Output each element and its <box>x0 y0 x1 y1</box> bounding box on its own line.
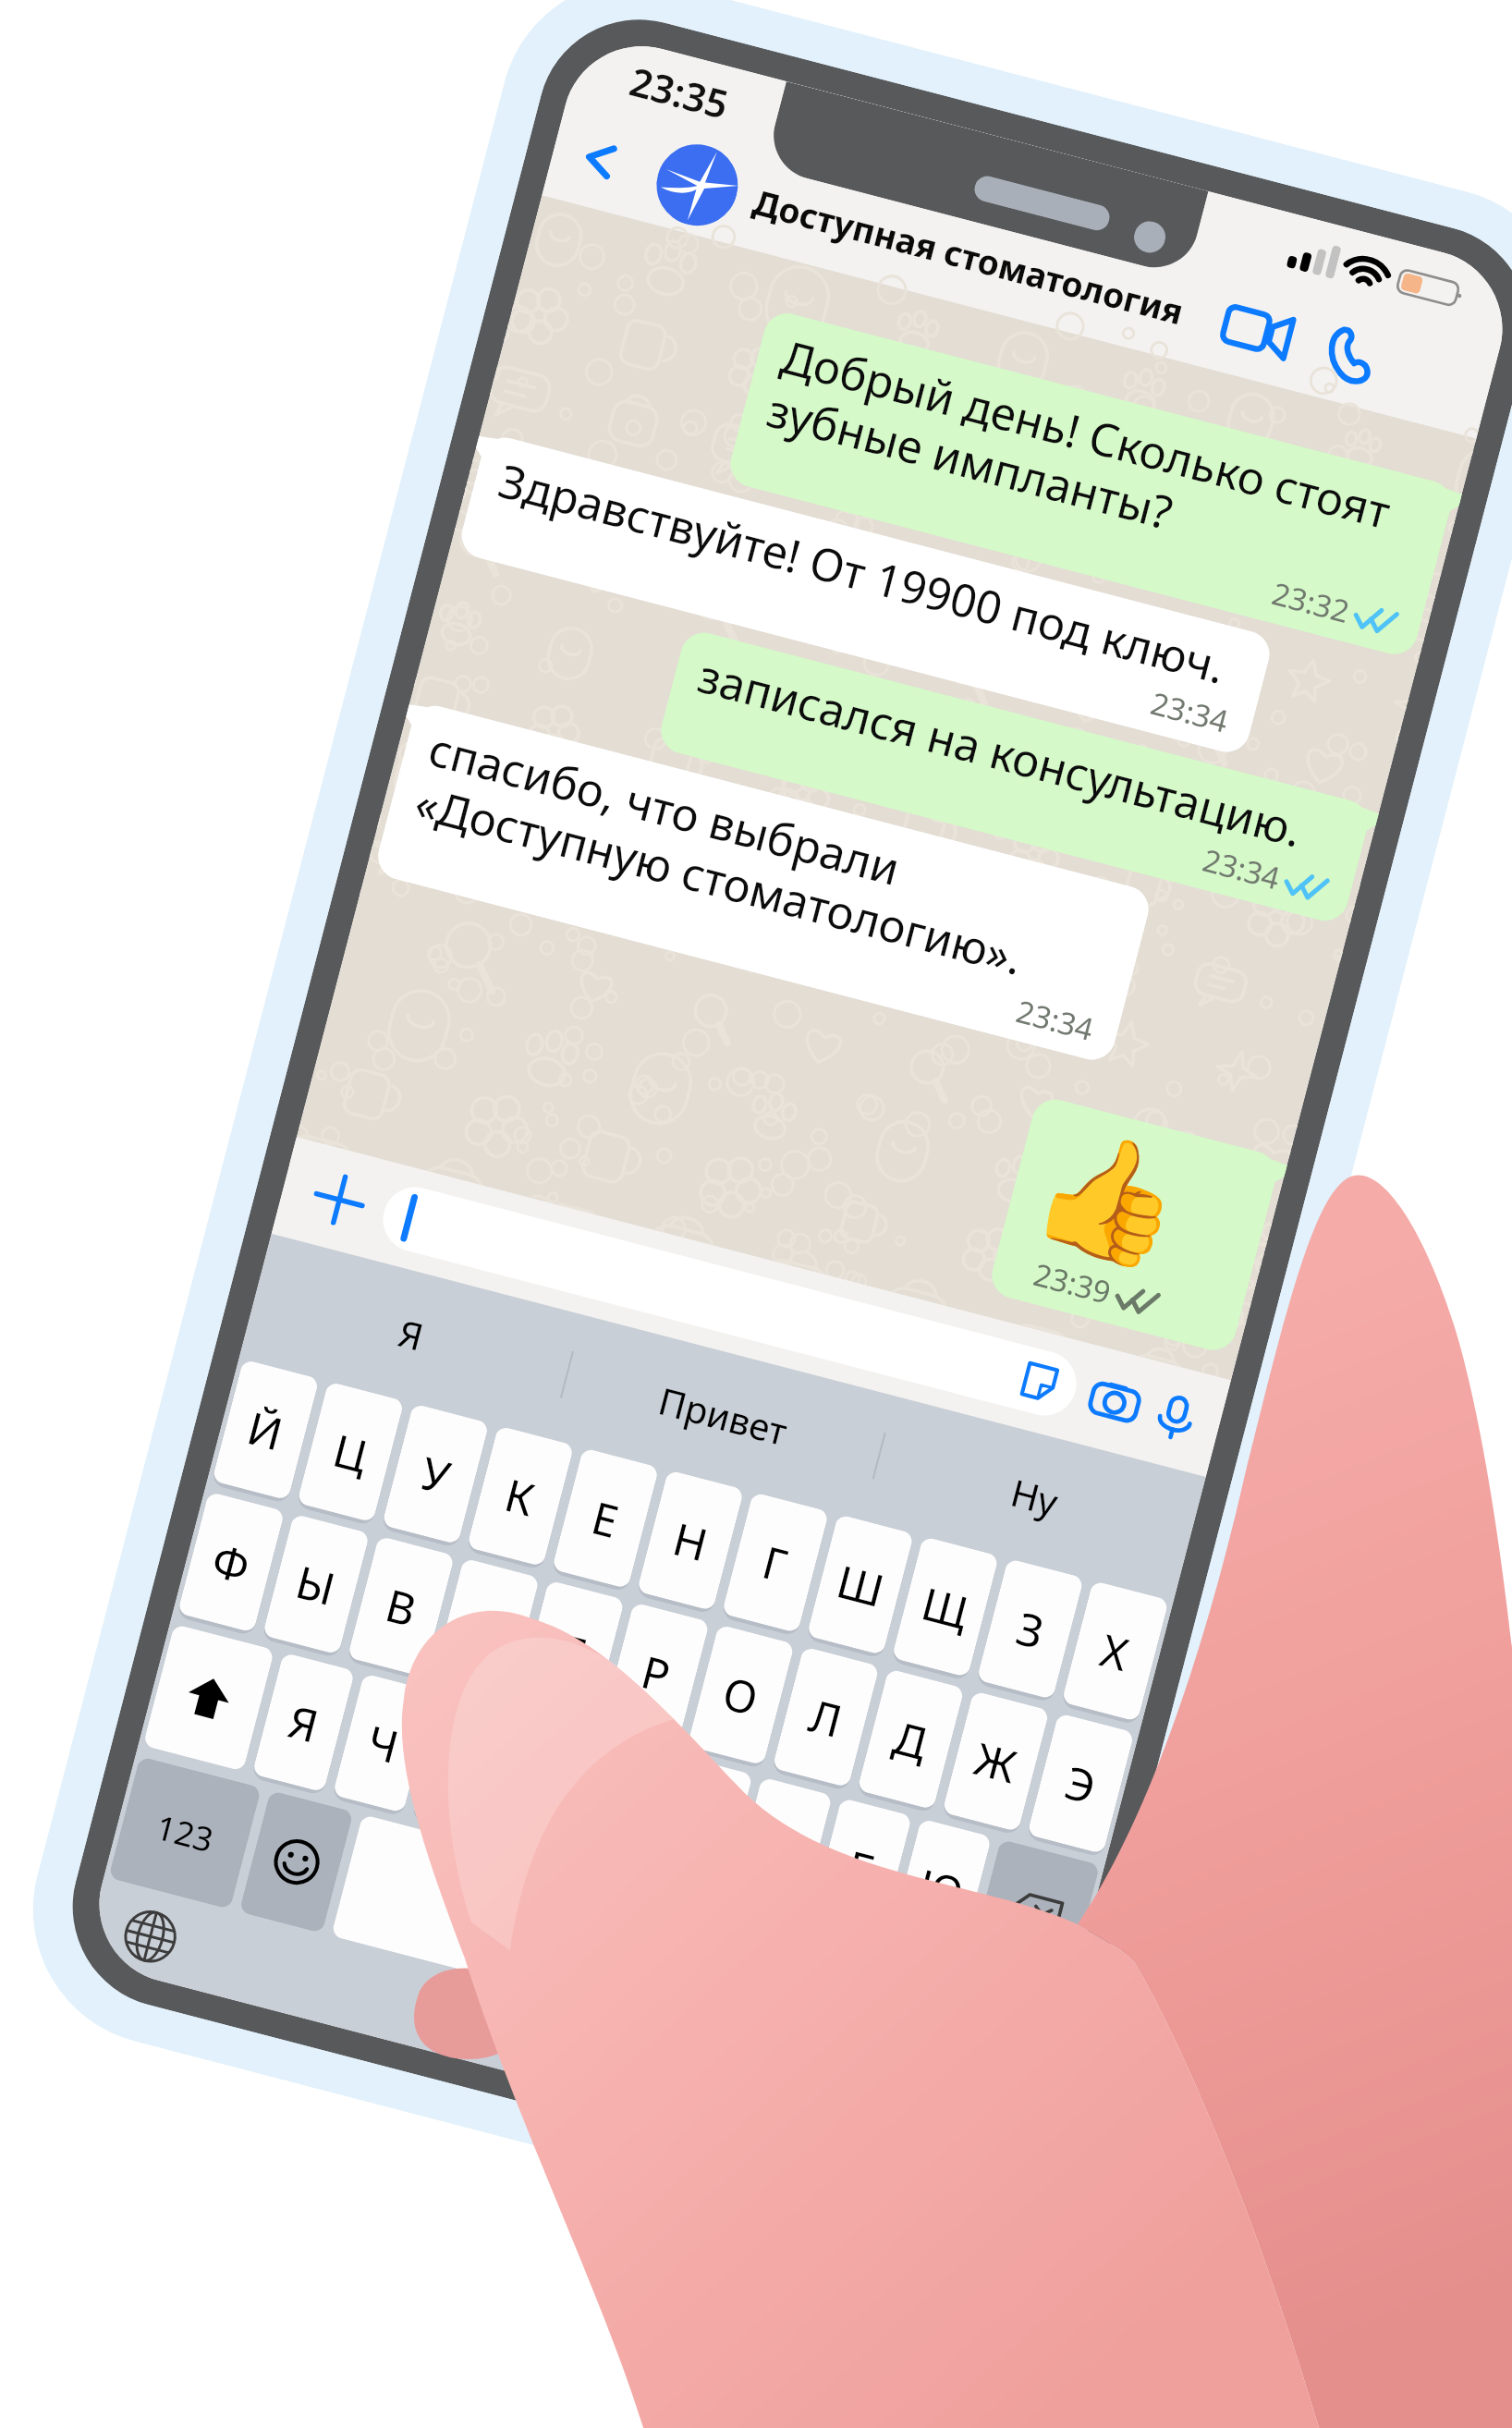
staticText: П <box>548 1618 595 1685</box>
staticText: Л <box>803 1685 849 1751</box>
staticText: Е <box>586 1487 625 1551</box>
button[interactable]: Д <box>857 1668 965 1810</box>
button[interactable]: Space <box>331 1814 789 2047</box>
button[interactable]: 123 <box>108 1756 262 1909</box>
button[interactable]: Stickers <box>1013 1355 1067 1409</box>
button[interactable]: И <box>571 1735 673 1875</box>
button[interactable]: П <box>517 1580 625 1721</box>
button[interactable]: Щ <box>891 1536 999 1678</box>
button[interactable]: Э <box>1027 1713 1135 1854</box>
button[interactable]: Call <box>1314 320 1384 390</box>
staticText: Ь <box>761 1815 803 1880</box>
button[interactable]: А <box>432 1558 540 1699</box>
button[interactable]: С <box>412 1694 514 1834</box>
button[interactable]: Ну <box>865 1396 1206 1596</box>
button[interactable]: Г <box>722 1492 829 1633</box>
button[interactable]: Ю <box>890 1818 992 1958</box>
button[interactable]: У <box>382 1403 489 1545</box>
staticText: Здравствуйте! От 19900 под ключ. <box>493 449 1233 698</box>
button[interactable]: Ш <box>806 1514 914 1655</box>
staticText: Ш <box>831 1550 891 1620</box>
button[interactable]: О <box>687 1624 795 1766</box>
button[interactable]: Attach <box>303 1164 375 1236</box>
staticText: Н <box>667 1508 714 1574</box>
staticText: Ч <box>361 1711 406 1777</box>
staticText: В <box>379 1574 423 1640</box>
staticText: Ж <box>969 1728 1023 1796</box>
staticText: 23:34 <box>1147 682 1233 742</box>
button[interactable]: Shift <box>143 1624 275 1772</box>
button[interactable]: К <box>467 1425 574 1567</box>
staticText: У <box>415 1442 457 1507</box>
button[interactable]: Camera <box>1083 1370 1146 1433</box>
button[interactable]: Back <box>563 123 635 195</box>
staticText: Ц <box>327 1419 374 1486</box>
button[interactable]: Х <box>1061 1580 1169 1722</box>
staticText: 123 <box>151 1804 218 1862</box>
staticText: М <box>516 1751 570 1819</box>
button[interactable]: Ц <box>297 1381 404 1523</box>
staticText: Доступная стоматология <box>749 178 1189 334</box>
button[interactable]: Я <box>252 1652 355 1792</box>
button[interactable]: Л <box>772 1646 880 1788</box>
button[interactable]: Change keyboard <box>82 1882 219 1991</box>
button[interactable]: Привет <box>552 1315 894 1515</box>
button[interactable]: Й <box>212 1359 319 1500</box>
button[interactable]: Stickers <box>376 1180 1084 1423</box>
staticText: Ы <box>290 1551 342 1619</box>
staticText: 23:35 <box>624 54 734 130</box>
staticText: 23:39 <box>1029 1253 1116 1313</box>
staticText: Б <box>840 1836 882 1901</box>
staticText: Я <box>282 1690 325 1756</box>
staticText: 23:34 <box>1198 839 1285 899</box>
button[interactable]: Я <box>240 1234 582 1433</box>
staticText: Г <box>756 1531 794 1595</box>
staticText: спасибо, что выбрали «Доступную стоматол… <box>409 717 1128 1010</box>
staticText: О <box>717 1662 765 1729</box>
staticText: Ю <box>912 1854 970 1924</box>
staticText: 23:34 <box>1012 990 1098 1050</box>
staticText: Р <box>635 1641 677 1706</box>
staticText: Д <box>888 1707 934 1773</box>
button[interactable]: Backspace <box>969 1839 1100 1987</box>
button[interactable]: Ь <box>730 1777 833 1917</box>
staticText: Я <box>393 1307 429 1361</box>
button[interactable]: Ф <box>177 1491 285 1633</box>
staticText: З <box>1011 1597 1051 1662</box>
staticText: К <box>499 1464 542 1529</box>
button[interactable]: Е <box>552 1448 659 1589</box>
button[interactable]: Б <box>810 1798 912 1938</box>
staticText: Щ <box>916 1573 976 1642</box>
button[interactable]: З <box>976 1558 1084 1700</box>
staticText: записался на консультацию. <box>692 644 1309 861</box>
staticText: А <box>464 1596 507 1662</box>
staticText: Х <box>1095 1619 1136 1684</box>
button[interactable]: М <box>492 1715 594 1855</box>
button[interactable]: Voice message <box>1146 1388 1205 1447</box>
staticText: Привет <box>654 1375 793 1456</box>
button[interactable]: Emoji <box>239 1790 354 1934</box>
button[interactable]: Р <box>602 1602 710 1744</box>
staticText: 23:32 <box>1268 572 1354 632</box>
staticText: Добрый день! Сколько стоят зубные имплан… <box>761 325 1430 604</box>
button[interactable]: Video call <box>1216 295 1298 367</box>
staticText: Й <box>241 1397 290 1464</box>
staticText: Э <box>1059 1751 1103 1817</box>
button[interactable]: В <box>347 1536 455 1677</box>
button[interactable]: Т <box>651 1756 753 1896</box>
staticText: Ну <box>1006 1466 1064 1527</box>
button[interactable]: Ж <box>942 1691 1050 1832</box>
staticText: 👍 <box>1020 1112 1198 1283</box>
button[interactable]: Ы <box>262 1514 370 1655</box>
button[interactable]: Н <box>637 1470 744 1611</box>
staticText: С <box>442 1732 484 1797</box>
button[interactable]: Ч <box>332 1673 435 1813</box>
staticText: Ф <box>206 1529 257 1596</box>
